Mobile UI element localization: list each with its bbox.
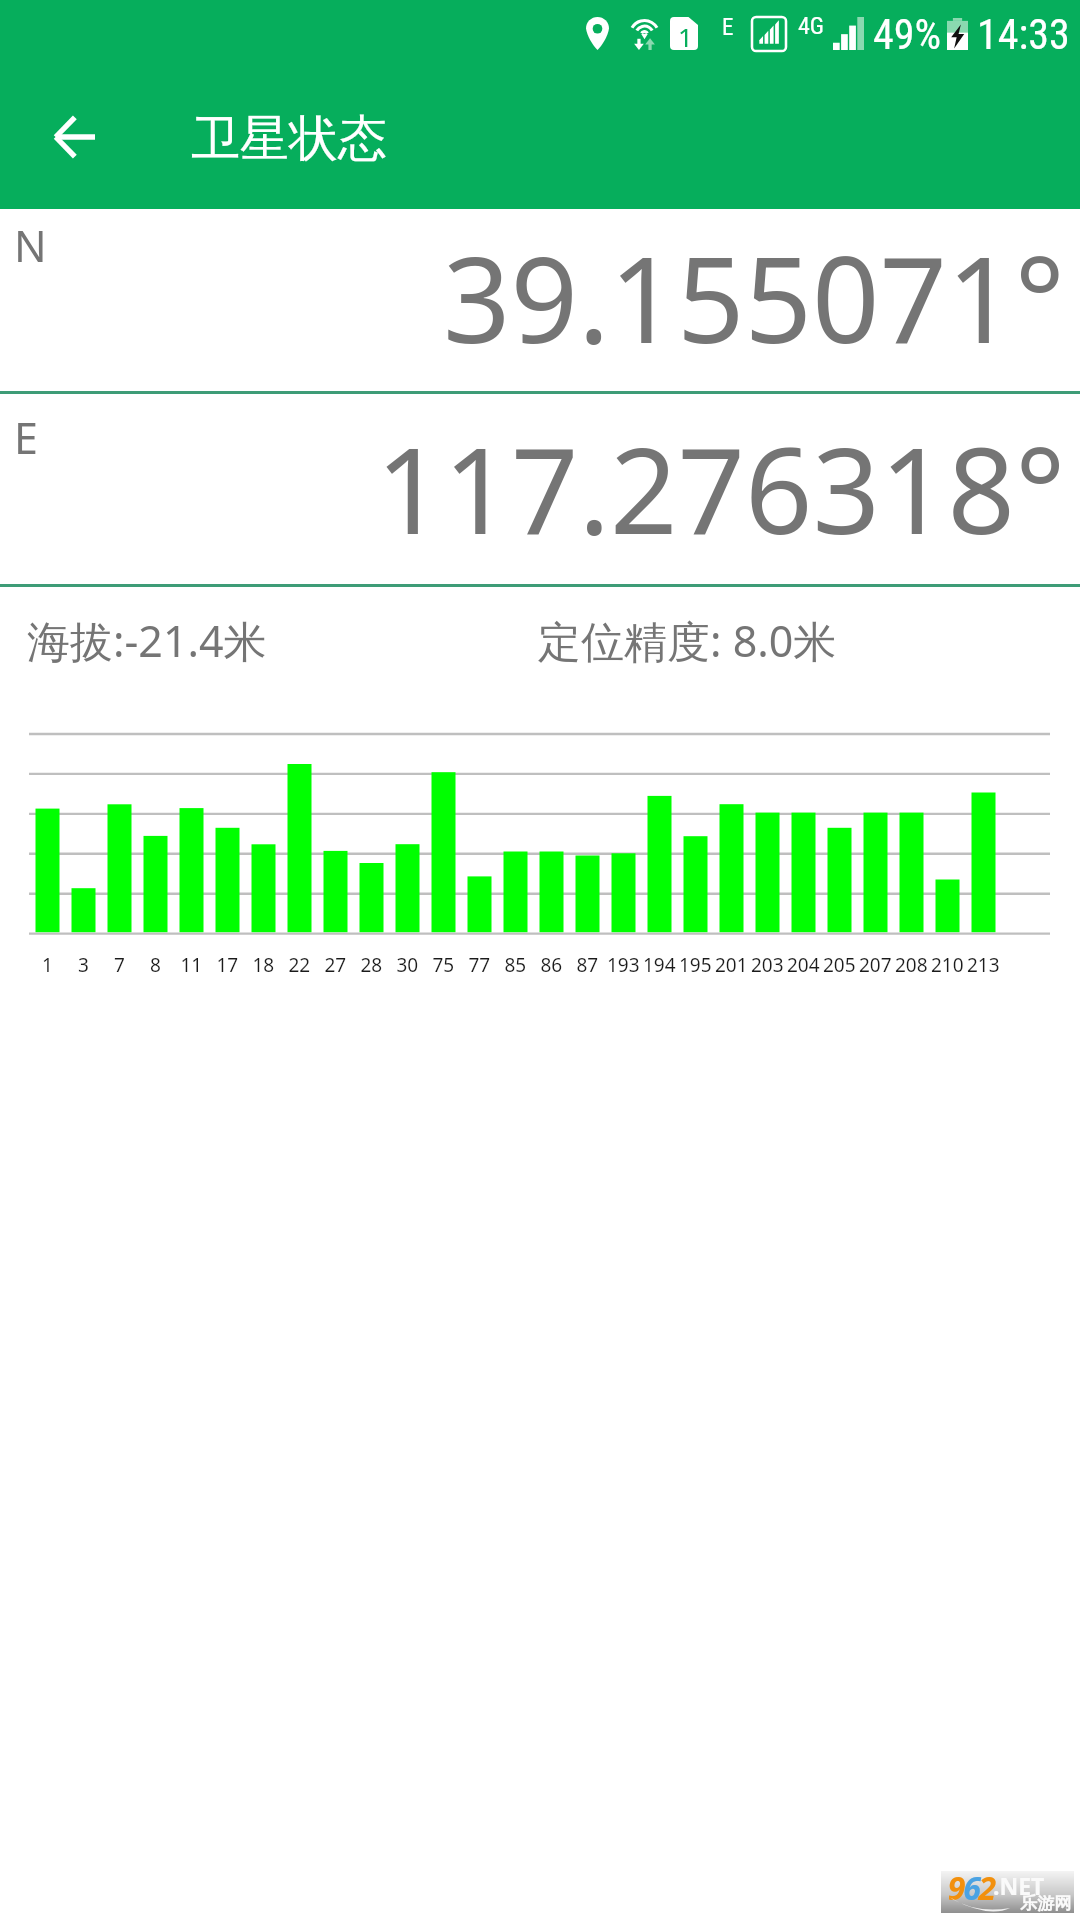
staticText: 14:33	[977, 10, 1070, 59]
staticText: E	[14, 408, 38, 467]
button[interactable]: Back	[26, 89, 122, 185]
staticText: N	[14, 216, 47, 275]
staticText: E	[722, 14, 734, 41]
staticText: 49%	[873, 10, 942, 59]
staticText: 4G	[798, 12, 825, 40]
staticText: 卫星状态	[191, 108, 387, 170]
button[interactable]: E	[0, 394, 1080, 584]
staticText: 39.155071°	[443, 217, 1066, 378]
staticText: 1	[678, 19, 693, 52]
button[interactable]: N	[0, 209, 1080, 391]
staticText: 海拔:-21.4米	[27, 611, 267, 670]
staticText: 117.276318°	[376, 408, 1066, 569]
staticText: 定位精度: 8.0米	[538, 611, 837, 670]
